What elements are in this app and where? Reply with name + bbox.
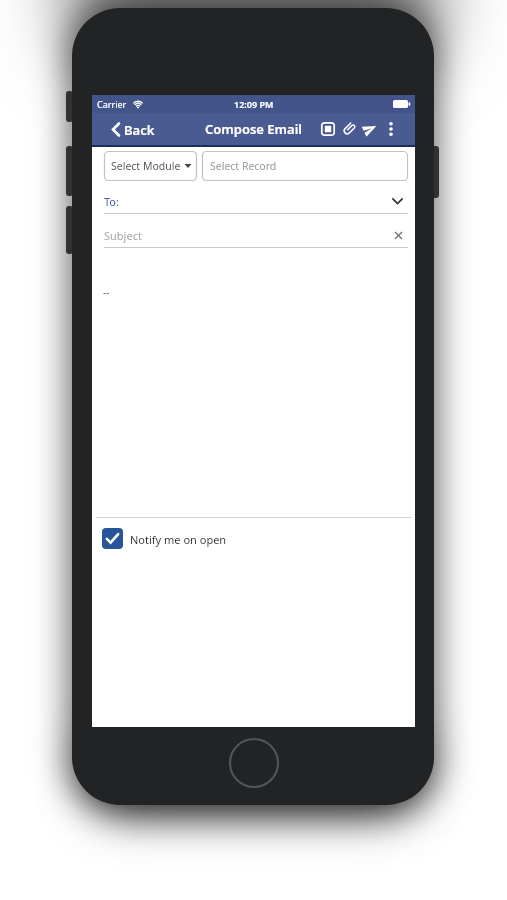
staticText: To: <box>104 194 119 209</box>
staticText: 12:09 PM <box>234 98 274 110</box>
staticText: Subject <box>104 228 142 243</box>
staticText: Select Record <box>210 159 277 173</box>
staticText: -- <box>103 285 110 299</box>
staticText: Compose Email <box>205 120 303 138</box>
staticText: Carrier <box>97 98 127 110</box>
staticText: Back <box>124 121 155 139</box>
staticText: Select Module <box>111 159 181 173</box>
staticText: Notify me on open <box>130 532 227 547</box>
